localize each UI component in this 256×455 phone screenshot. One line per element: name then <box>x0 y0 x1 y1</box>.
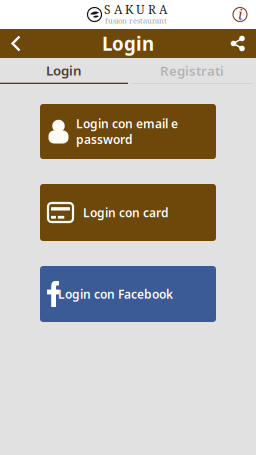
button[interactable]: Login <box>0 58 128 84</box>
button[interactable]: Registrati <box>128 58 256 84</box>
staticText: Registrati <box>160 62 224 79</box>
staticText: i <box>238 4 242 24</box>
button[interactable]: Share <box>229 35 256 52</box>
button[interactable]: Login con card <box>40 184 216 241</box>
button[interactable]: Info <box>232 6 256 22</box>
staticText: fusion restaurant <box>105 16 167 26</box>
staticText: Login con Facebook <box>58 286 173 302</box>
staticText: Login con card <box>83 204 169 220</box>
button[interactable]: Back <box>0 35 22 52</box>
staticText: Login con email e password <box>76 116 178 147</box>
button[interactable]: Login con email e password <box>40 104 216 159</box>
staticText: Login <box>102 31 154 56</box>
staticText: S A K U R A <box>104 1 167 17</box>
staticText: Login <box>46 61 82 79</box>
button[interactable]: Login con Facebook <box>40 266 216 322</box>
